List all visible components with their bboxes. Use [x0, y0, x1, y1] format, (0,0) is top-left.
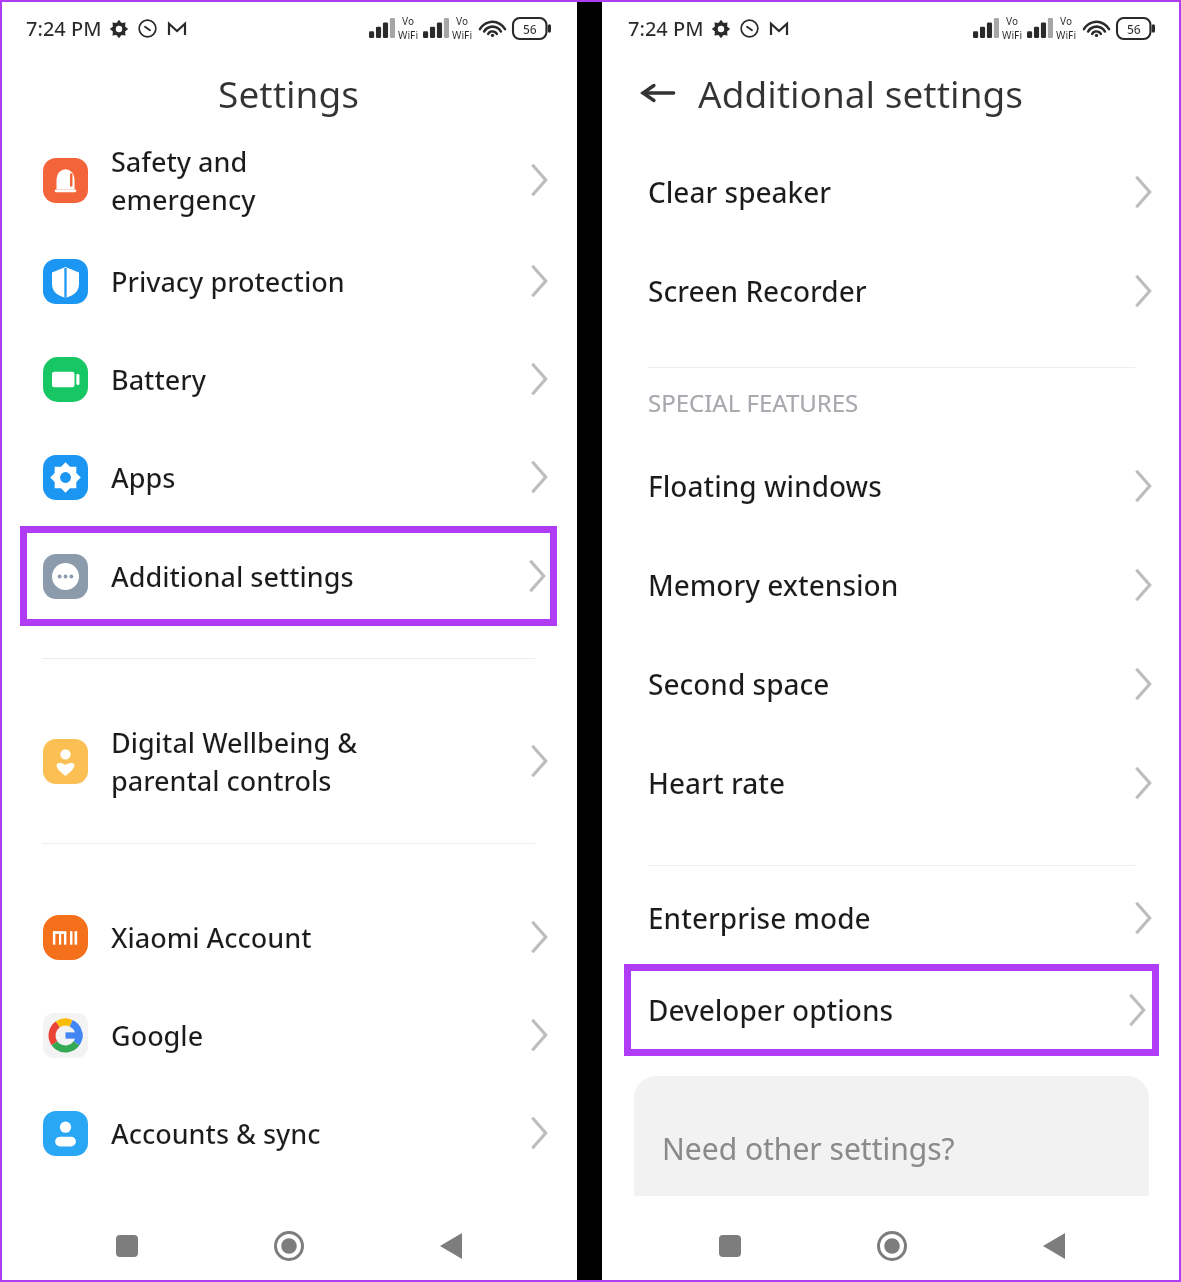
- button[interactable]: Accounts & sync: [0, 1084, 577, 1182]
- staticText: 7:24 PM: [628, 15, 704, 42]
- staticText: Battery: [111, 361, 519, 398]
- button[interactable]: Apps: [0, 428, 577, 526]
- button[interactable]: Home: [260, 1217, 318, 1275]
- staticText: Need other settings?: [662, 1128, 955, 1169]
- staticText: Additional settings: [111, 558, 529, 595]
- staticText: Vo: [1060, 14, 1073, 28]
- staticText: WiFi: [1056, 28, 1077, 42]
- staticText: Memory extension: [648, 566, 1135, 604]
- button[interactable]: Heart rate: [602, 733, 1181, 832]
- staticText: Clear speaker: [648, 173, 1135, 211]
- staticText: 56: [523, 21, 537, 37]
- button[interactable]: Recents: [701, 1217, 759, 1275]
- button[interactable]: Floating windows: [602, 436, 1181, 535]
- staticText: Floating windows: [648, 467, 1135, 505]
- staticText: Apps: [111, 459, 519, 496]
- button[interactable]: Additional settings: [20, 526, 557, 626]
- staticText: Additional settings: [698, 68, 1023, 118]
- staticText: Vo: [1006, 14, 1019, 28]
- staticText: Second space: [648, 665, 1135, 703]
- button[interactable]: Recents: [98, 1217, 156, 1275]
- staticText: WiFi: [398, 28, 419, 42]
- staticText: Screen Recorder: [648, 272, 1135, 310]
- staticText: Safety and emergency: [111, 143, 519, 218]
- button[interactable]: Second space: [602, 634, 1181, 733]
- button[interactable]: Safety and emergency: [0, 128, 577, 232]
- staticText: Digital Wellbeing & parental controls: [111, 724, 519, 799]
- button[interactable]: Google: [0, 986, 577, 1084]
- button[interactable]: Digital Wellbeing & parental controls: [0, 709, 577, 813]
- staticText: 56: [1127, 21, 1141, 37]
- button[interactable]: Xiaomi Account: [0, 888, 577, 986]
- staticText: Google: [111, 1017, 519, 1054]
- button[interactable]: Screen Recorder: [602, 241, 1181, 340]
- button[interactable]: Back: [632, 67, 684, 119]
- staticText: WiFi: [452, 28, 473, 42]
- staticText: Heart rate: [648, 764, 1135, 802]
- staticText: Vo: [456, 14, 469, 28]
- button[interactable]: Back: [422, 1217, 480, 1275]
- button[interactable]: Home: [863, 1217, 921, 1275]
- button[interactable]: Need other settings?: [634, 1076, 1149, 1196]
- button[interactable]: Back: [1025, 1217, 1083, 1275]
- button[interactable]: Memory extension: [602, 535, 1181, 634]
- staticText: Developer options: [648, 991, 1129, 1029]
- button[interactable]: Privacy protection: [0, 232, 577, 330]
- button[interactable]: Developer options: [624, 964, 1159, 1056]
- staticText: Settings: [218, 68, 359, 118]
- staticText: Xiaomi Account: [111, 919, 519, 956]
- button[interactable]: Enterprise mode: [602, 872, 1181, 964]
- staticText: Privacy protection: [111, 263, 519, 300]
- button[interactable]: Battery: [0, 330, 577, 428]
- staticText: Vo: [402, 14, 415, 28]
- staticText: SPECIAL FEATURES: [648, 386, 859, 419]
- staticText: WiFi: [1002, 28, 1023, 42]
- staticText: 7:24 PM: [26, 15, 102, 42]
- button[interactable]: Clear speaker: [602, 142, 1181, 241]
- staticText: Enterprise mode: [648, 899, 1135, 937]
- staticText: Accounts & sync: [111, 1115, 519, 1152]
